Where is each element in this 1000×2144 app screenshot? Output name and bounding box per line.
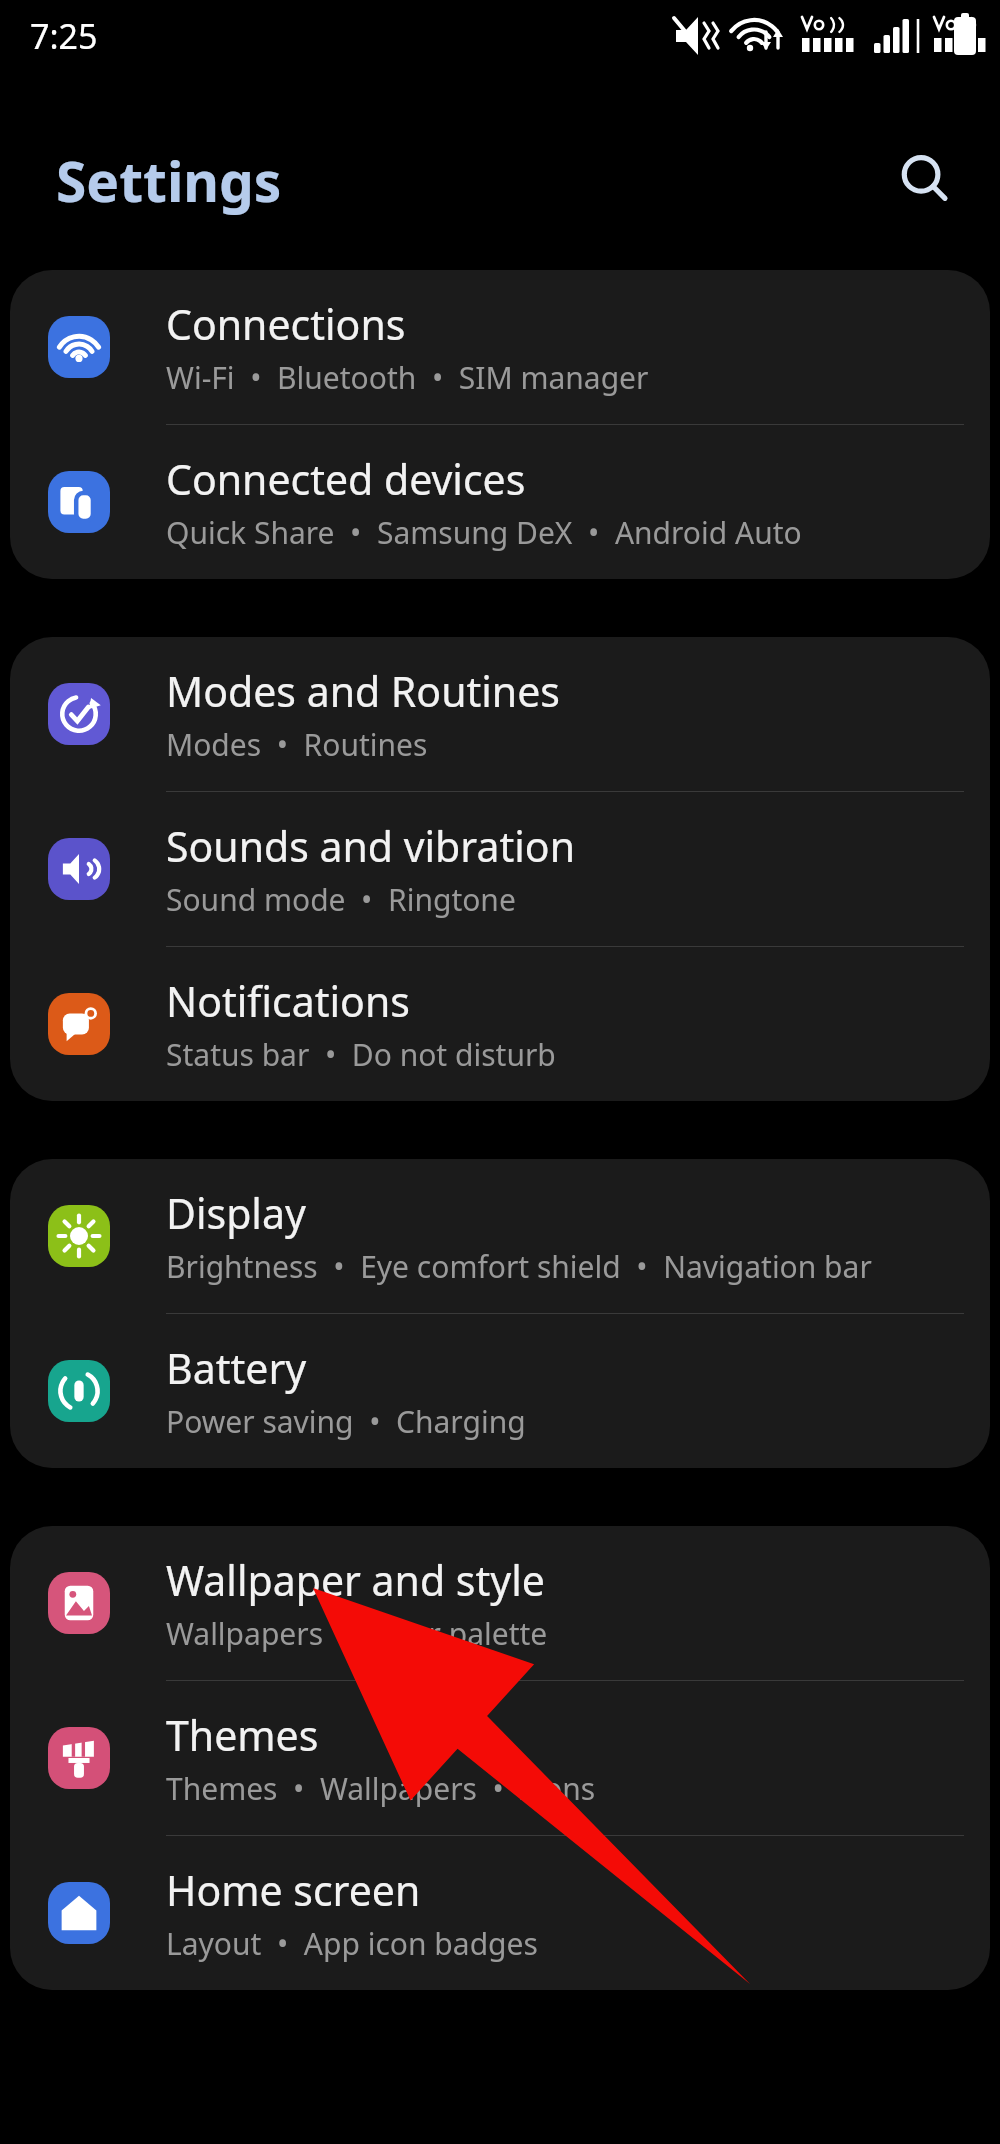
staticText: Settings [56, 143, 282, 218]
staticText: Sounds and vibration [166, 818, 575, 874]
staticText: Layout • App icon badges [166, 1923, 538, 1964]
staticText: Power saving • Charging [166, 1401, 526, 1442]
button[interactable]: Display [10, 1159, 990, 1313]
button[interactable]: Wallpaper and style [10, 1526, 990, 1680]
button[interactable]: Home screen [10, 1836, 990, 1990]
staticText: Connected devices [166, 451, 526, 507]
button[interactable]: Notifications [10, 947, 990, 1101]
staticText: Wi‑Fi • Bluetooth • SIM manager [166, 357, 649, 398]
staticText: Battery [166, 1340, 307, 1396]
button[interactable]: Sounds and vibration [10, 792, 990, 946]
staticText: Status bar • Do not disturb [166, 1034, 556, 1075]
button[interactable]: Modes and Routines [10, 637, 990, 791]
staticText: 7:25 [30, 13, 98, 59]
button[interactable]: Connected devices [10, 425, 990, 579]
staticText: Themes • Wallpapers • Icons [166, 1768, 596, 1809]
staticText: Connections [166, 296, 406, 352]
staticText: Sound mode • Ringtone [166, 879, 516, 920]
staticText: Modes • Routines [166, 724, 428, 765]
button[interactable]: Battery [10, 1314, 990, 1468]
staticText: Modes and Routines [166, 663, 560, 719]
button[interactable]: Search settings [880, 135, 970, 225]
staticText: Wallpaper and style [166, 1552, 545, 1608]
staticText: Wallpapers • Color palette [166, 1613, 548, 1654]
staticText: Display [166, 1185, 306, 1241]
button[interactable]: Connections [10, 270, 990, 424]
button[interactable]: Themes [10, 1681, 990, 1835]
staticText: Brightness • Eye comfort shield • Naviga… [166, 1246, 872, 1287]
staticText: Themes [166, 1707, 319, 1763]
staticText: Notifications [166, 973, 410, 1029]
staticText: Quick Share • Samsung DeX • Android Auto [166, 512, 802, 553]
staticText: Home screen [166, 1862, 421, 1918]
